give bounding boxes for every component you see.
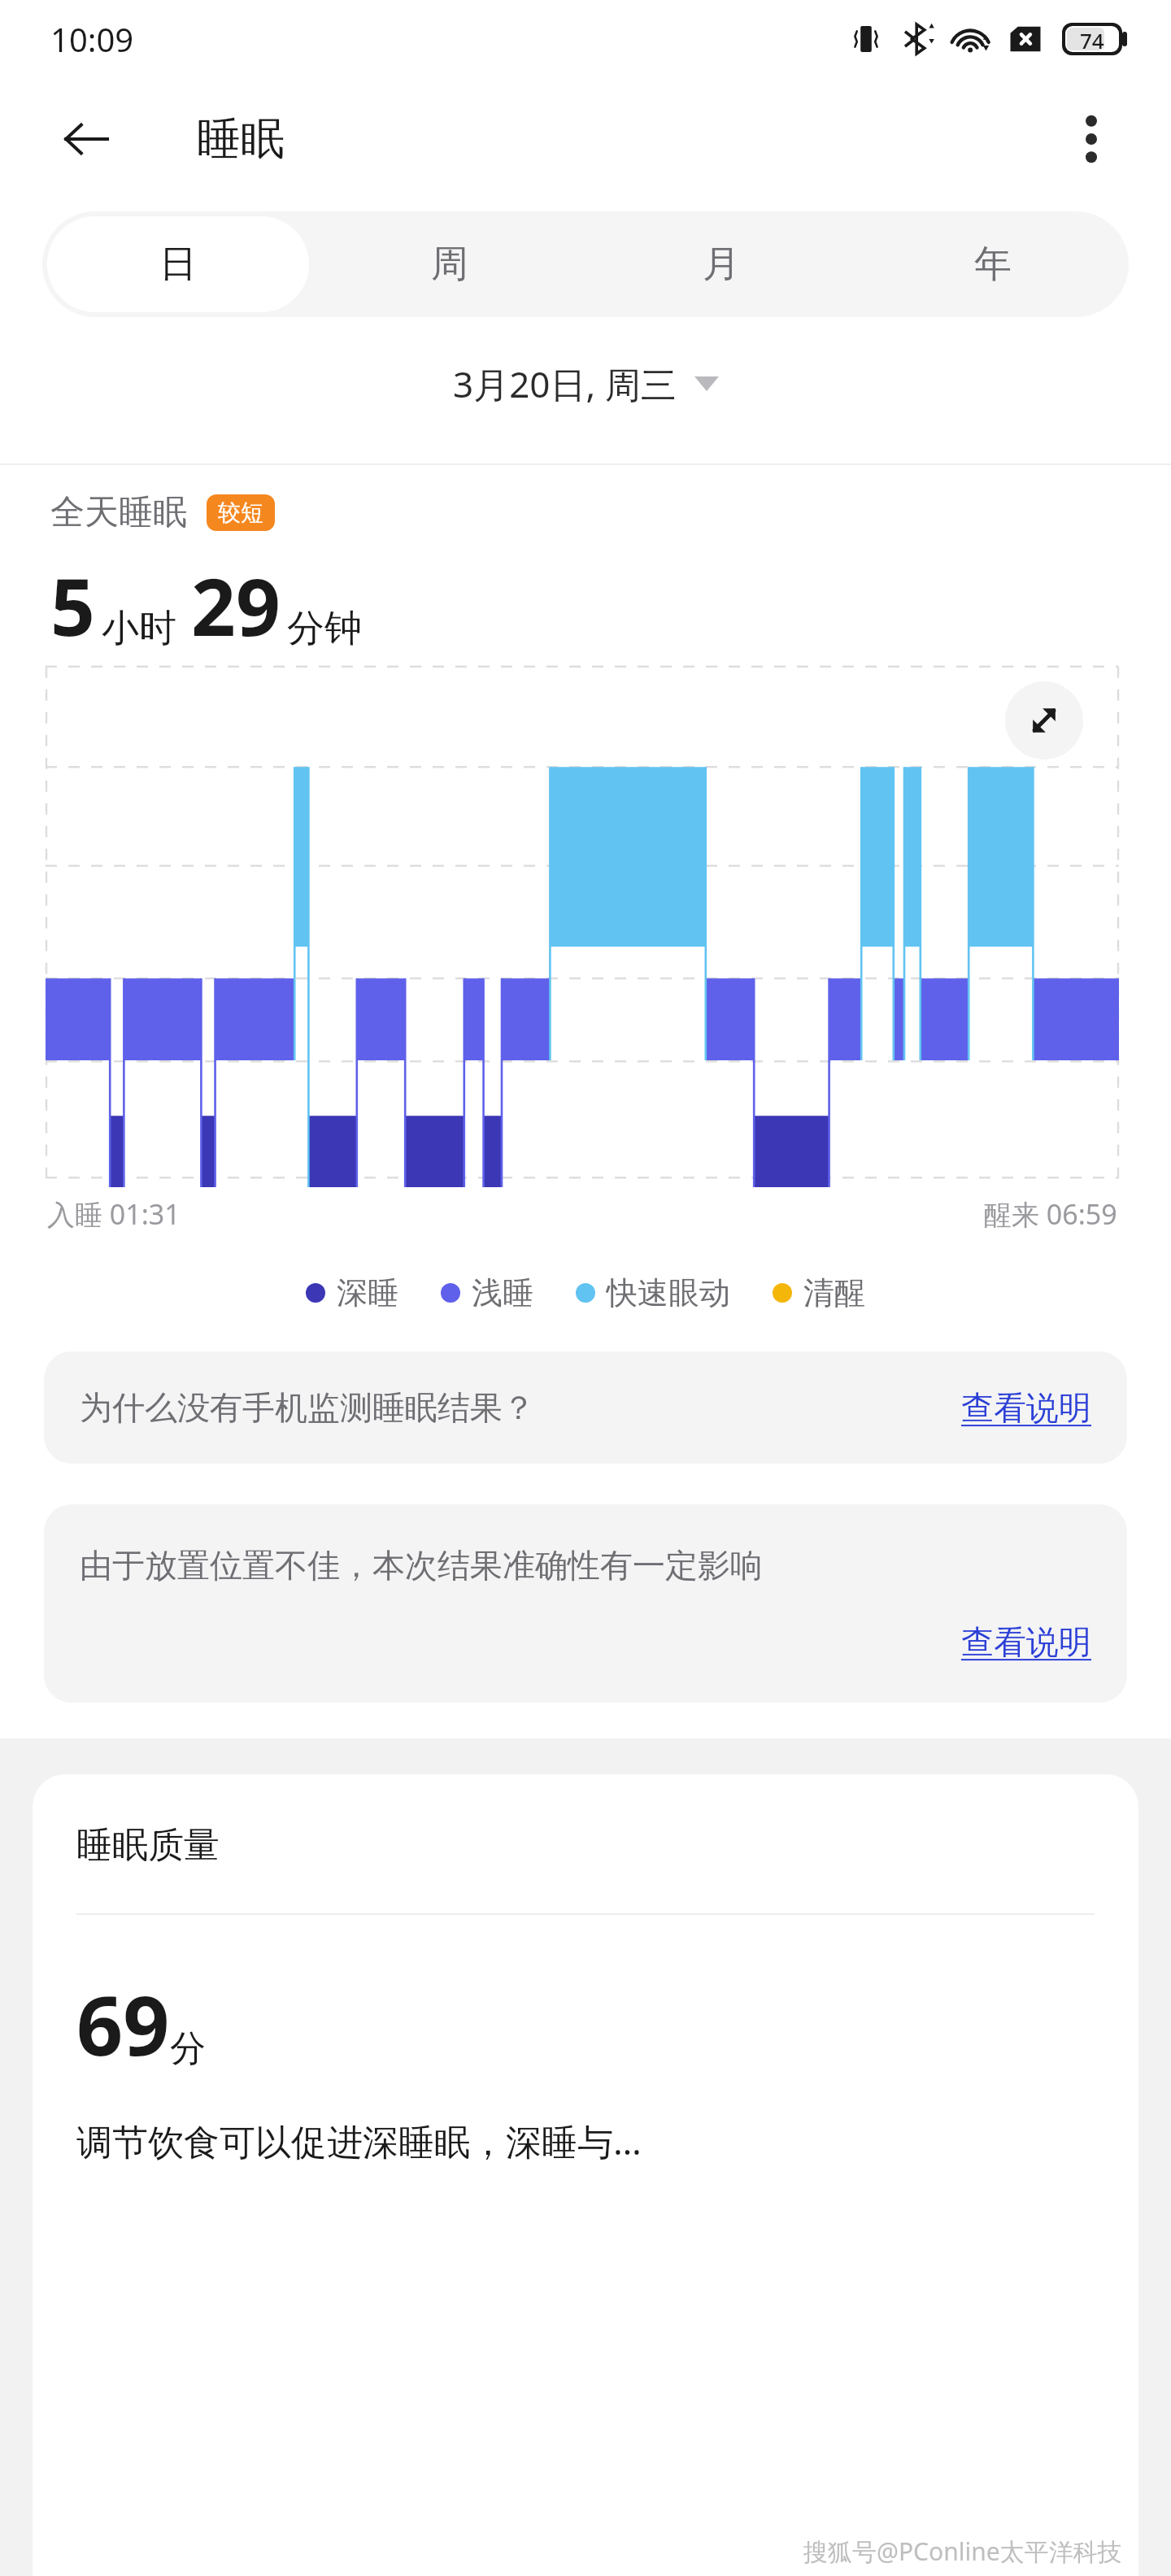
staticText: 周 [431,241,468,288]
staticText: 睡眠 [197,111,285,167]
staticText: 清醒 [803,1273,865,1312]
button[interactable]: 日 [47,216,309,312]
staticText: 调节饮食可以促进深睡眠，深睡与… [76,2117,642,2165]
staticText: 分钟 [287,605,362,652]
staticText: 睡眠质量 [76,1823,220,1868]
staticText: 搜狐号@PConline太平洋科技 [803,2535,1122,2568]
staticText: 醒来 06:59 [984,1195,1117,1233]
staticText: 月 [703,241,740,288]
button[interactable]: Expand chart [1005,681,1083,759]
staticText: 29 [191,552,281,659]
button[interactable]: 年 [862,216,1124,312]
staticText: 查看说明 [961,1621,1091,1662]
staticText: 小时 [102,605,176,652]
button[interactable]: 3月20日, 周三 [443,351,729,416]
staticText: 入睡 01:31 [47,1195,181,1233]
staticText: 分 [170,2026,206,2071]
staticText: 3月20日, 周三 [453,359,677,408]
staticText: 查看说明 [961,1387,1091,1428]
button[interactable]: 为什么没有手机监测睡眠结果？ [44,1351,1127,1464]
staticText: 深睡 [337,1273,398,1312]
button[interactable]: 月 [590,216,852,312]
staticText: 全天睡眠 [50,491,187,534]
staticText: 69 [76,1969,170,2079]
button[interactable]: Back [50,103,122,175]
staticText: 10:09 [50,17,134,61]
staticText: 由于放置位置不佳，本次结果准确性有一定影响 [80,1545,763,1586]
staticText: 较短 [218,498,263,527]
staticText: 5 [50,552,95,659]
staticText: 浅睡 [472,1273,533,1312]
staticText: 年 [974,241,1012,288]
staticText: 快速眼动 [607,1273,730,1312]
button[interactable]: More options [1056,103,1127,175]
button[interactable]: 由于放置位置不佳，本次结果准确性有一定影响 [44,1504,1127,1703]
staticText: 为什么没有手机监测睡眠结果？ [80,1387,535,1428]
staticText: 74 [1080,26,1104,52]
button[interactable]: 周 [319,216,581,312]
staticText: 日 [159,241,197,288]
